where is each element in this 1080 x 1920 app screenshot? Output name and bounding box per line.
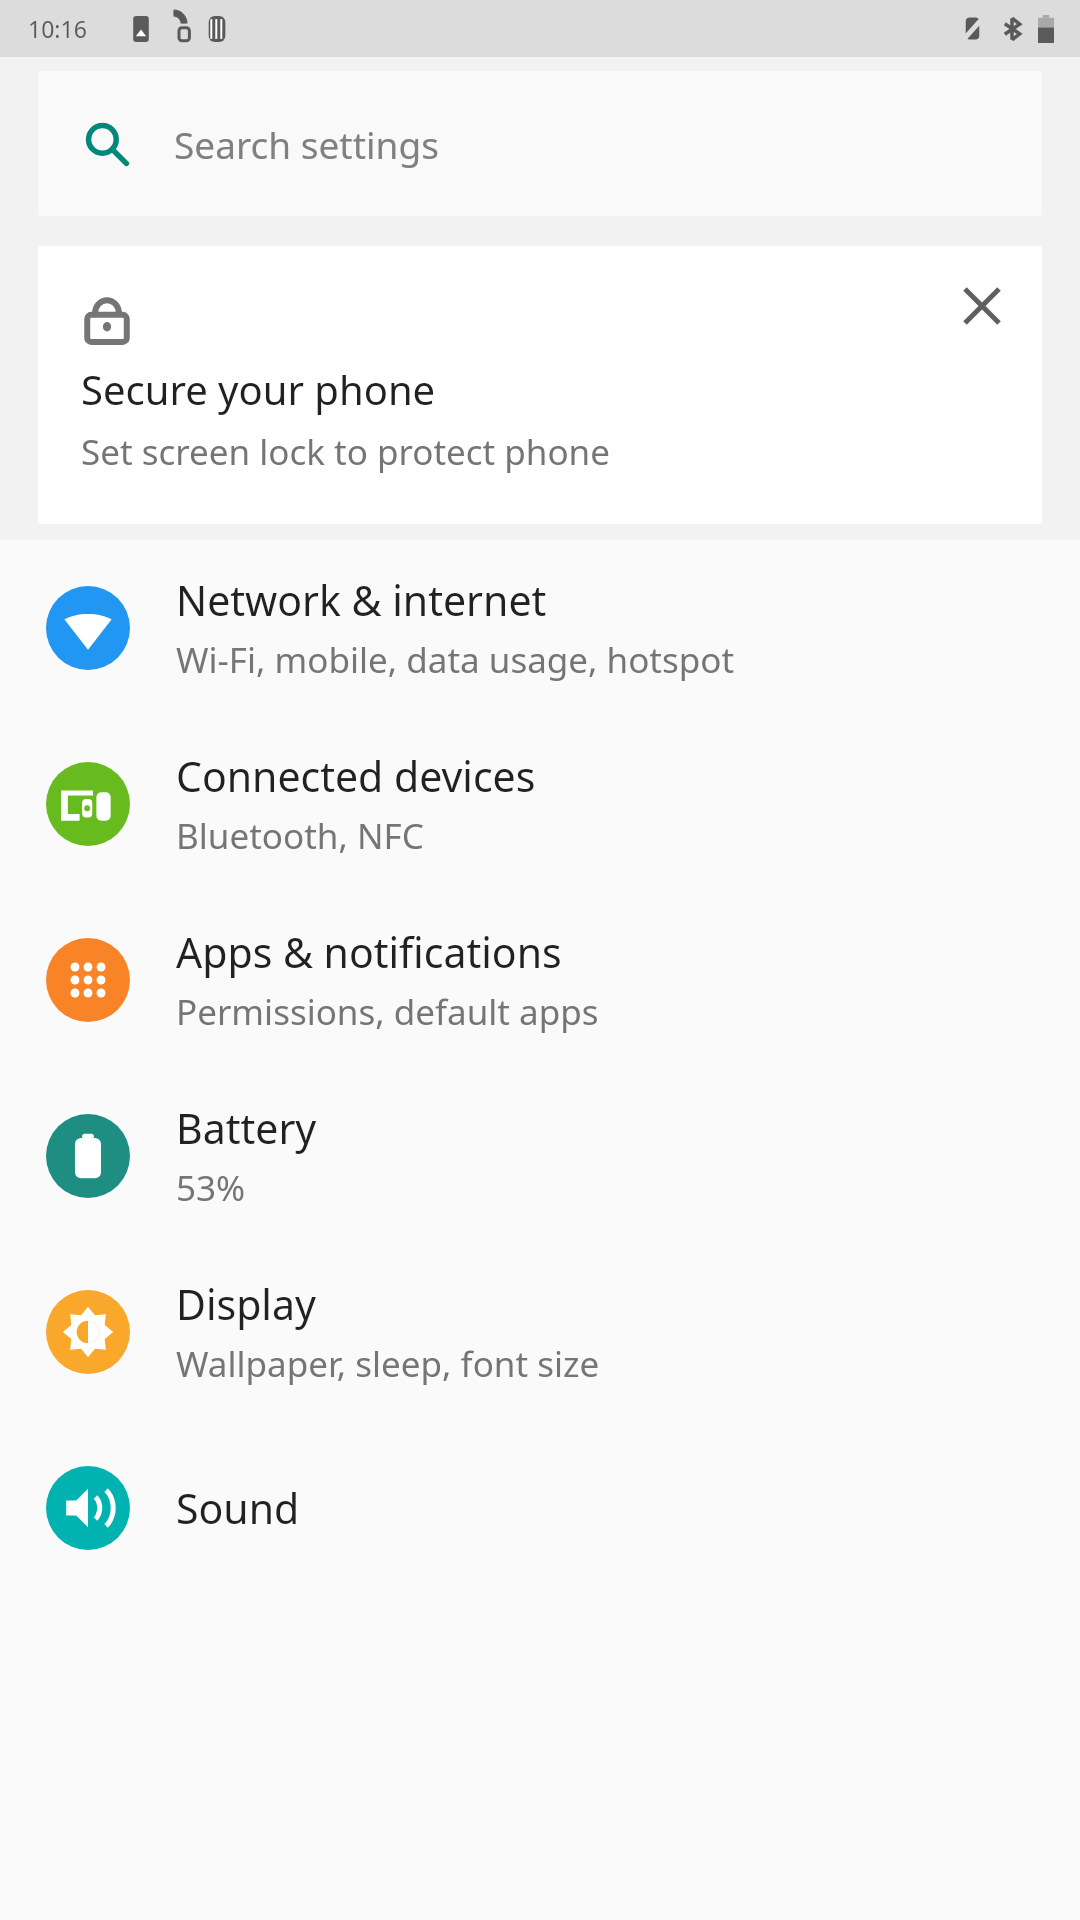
- staticText: Connected devices: [176, 748, 536, 804]
- staticText: Bluetooth, NFC: [176, 812, 424, 860]
- staticText: Display: [176, 1276, 316, 1332]
- button[interactable]: Connected devices: [0, 716, 1080, 892]
- staticText: Network & internet: [176, 572, 547, 628]
- staticText: Sound: [176, 1480, 300, 1536]
- staticText: Permissions, default apps: [176, 988, 599, 1036]
- button[interactable]: Dismiss: [950, 274, 1014, 338]
- staticText: Battery: [176, 1100, 317, 1156]
- button[interactable]: Battery: [0, 1068, 1080, 1244]
- button[interactable]: Apps & notifications: [0, 892, 1080, 1068]
- button[interactable]: Sound: [0, 1420, 1080, 1596]
- button[interactable]: Dismiss: [38, 246, 1042, 524]
- staticText: 10:16: [28, 13, 87, 44]
- button[interactable]: Network & internet: [0, 540, 1080, 716]
- staticText: Secure your phone: [81, 362, 436, 416]
- staticText: Search settings: [174, 119, 439, 169]
- staticText: Wi-Fi, mobile, data usage, hotspot: [176, 636, 735, 684]
- staticText: Apps & notifications: [176, 924, 562, 980]
- staticText: Set screen lock to protect phone: [81, 428, 610, 476]
- button[interactable]: Search settings: [38, 71, 1042, 216]
- staticText: Wallpaper, sleep, font size: [176, 1340, 600, 1388]
- staticText: 53%: [176, 1164, 246, 1212]
- button[interactable]: Display: [0, 1244, 1080, 1420]
